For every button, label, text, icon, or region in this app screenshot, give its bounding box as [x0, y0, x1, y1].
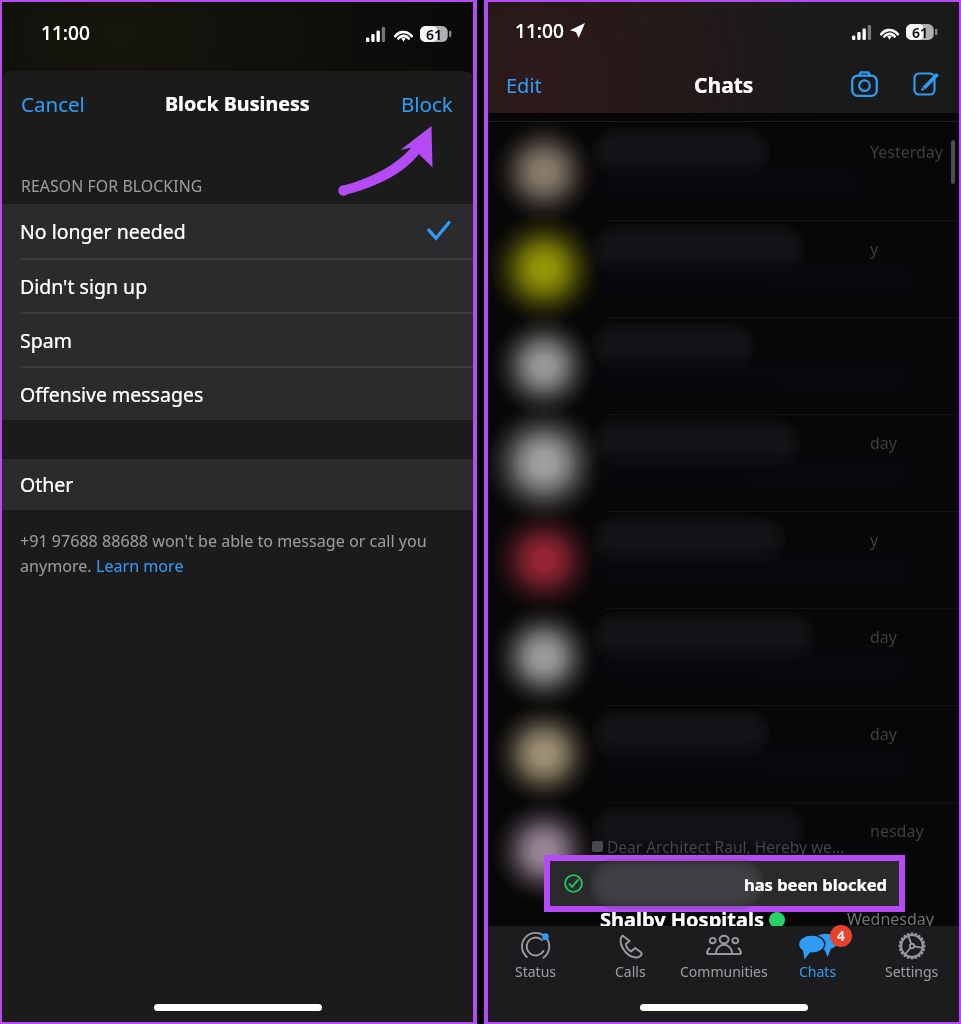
staticText: Settings	[885, 962, 939, 981]
staticText: Chats	[694, 71, 754, 100]
button[interactable]: Cancel	[21, 90, 85, 118]
staticText: Chats	[799, 962, 837, 981]
button[interactable]: Other	[2, 459, 473, 510]
staticText: Block	[401, 90, 453, 118]
button[interactable]: Camera	[851, 71, 878, 97]
staticText: has been blocked	[744, 873, 888, 895]
button[interactable]: Spam	[2, 314, 473, 366]
staticText: Offensive messages	[20, 381, 204, 408]
staticText: No longer needed	[20, 218, 186, 245]
staticText: REASON FOR BLOCKING	[21, 175, 203, 197]
staticText: 11:00	[515, 18, 564, 44]
button[interactable]: No longer needed	[2, 204, 473, 258]
staticText: Other	[20, 471, 74, 498]
button[interactable]: Edit	[506, 72, 542, 99]
staticText: anymore.	[20, 555, 96, 577]
staticText: Edit	[506, 72, 542, 99]
staticText: Block Business	[165, 90, 310, 117]
staticText: y	[870, 238, 879, 260]
button[interactable]: has been blocked	[550, 861, 899, 906]
button[interactable]: Calls	[583, 926, 677, 1022]
button[interactable]: 4	[771, 926, 865, 1022]
staticText: y	[870, 529, 879, 551]
staticText: Dear Architect Raul, Hereby we...	[607, 836, 845, 857]
staticText: Wednesday	[847, 908, 934, 930]
staticText: nesday	[870, 820, 924, 842]
staticText: Didn't sign up	[20, 273, 148, 300]
staticText: Communities	[680, 962, 768, 981]
button[interactable]: Block	[401, 90, 453, 118]
staticText: Yesterday	[870, 141, 944, 163]
staticText: 61	[426, 25, 443, 41]
staticText: day	[870, 723, 897, 745]
staticText: Cancel	[21, 90, 85, 118]
staticText: day	[870, 626, 897, 648]
staticText: day	[870, 432, 897, 454]
staticText: +91 97688 88688 won't be able to message…	[20, 530, 427, 552]
staticText: Spam	[20, 327, 72, 354]
button[interactable]: Communities	[677, 926, 771, 1022]
staticText: Status	[515, 962, 557, 981]
button[interactable]: Didn't sign up	[2, 260, 473, 312]
staticText: Learn more	[96, 555, 184, 577]
button[interactable]: New chat	[914, 72, 939, 96]
button[interactable]: Settings	[865, 926, 959, 1022]
button[interactable]: Learn more	[96, 555, 184, 577]
staticText: Calls	[615, 962, 646, 981]
button[interactable]: Offensive messages	[2, 368, 473, 420]
staticText: 11:00	[41, 20, 90, 46]
staticText: 4	[837, 927, 845, 945]
staticText: Shalby Hospitals	[600, 906, 764, 933]
staticText: 61	[912, 23, 929, 39]
button[interactable]: Status	[488, 926, 583, 1022]
